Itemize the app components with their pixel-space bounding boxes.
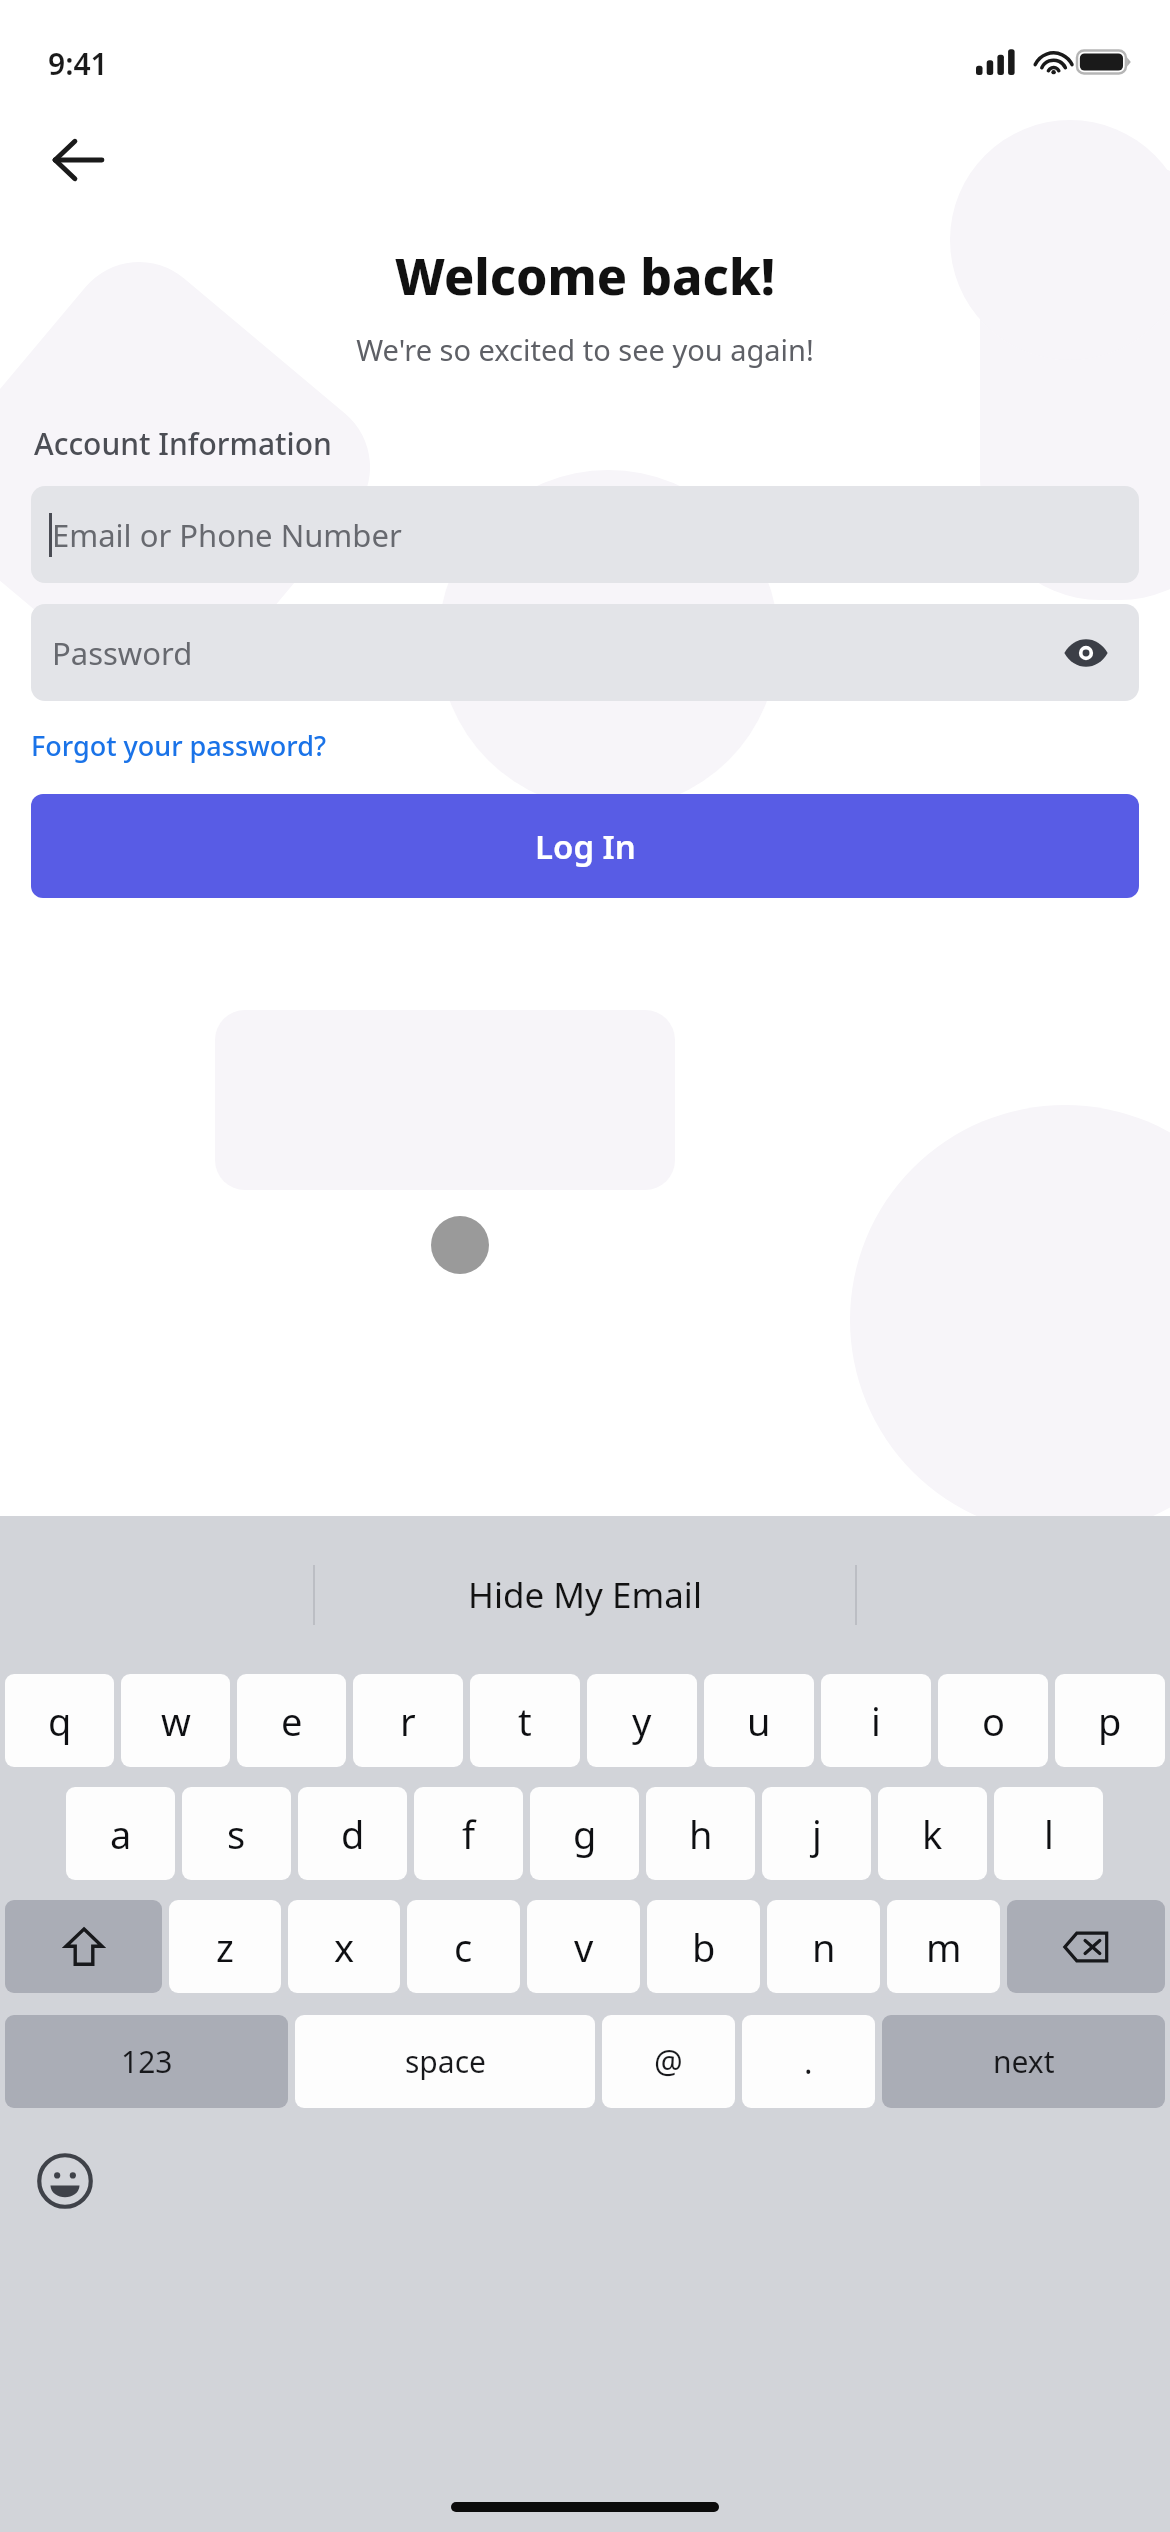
button[interactable]: a <box>66 1787 175 1880</box>
staticText: p <box>1098 1695 1122 1747</box>
button[interactable]: r <box>353 1674 463 1767</box>
button[interactable]: p <box>1055 1674 1165 1767</box>
button[interactable]: Show password <box>1055 622 1117 684</box>
staticText: next <box>993 2041 1055 2082</box>
button[interactable]: h <box>646 1787 755 1880</box>
button[interactable]: Backspace <box>1007 1900 1165 1993</box>
button[interactable]: d <box>298 1787 407 1880</box>
button[interactable]: b <box>647 1900 760 1993</box>
staticText: We're so excited to see you again! <box>0 330 1170 369</box>
staticText: s <box>227 1808 246 1860</box>
staticText: Log In <box>535 824 636 869</box>
button[interactable]: space <box>295 2015 595 2108</box>
staticText: f <box>462 1808 476 1860</box>
button[interactable]: s <box>182 1787 291 1880</box>
staticText: x <box>334 1921 355 1973</box>
staticText: z <box>216 1921 234 1973</box>
staticText: m <box>926 1921 962 1973</box>
staticText: v <box>574 1921 594 1973</box>
staticText: a <box>110 1808 132 1860</box>
button[interactable]: o <box>938 1674 1048 1767</box>
button[interactable]: q <box>5 1674 114 1767</box>
staticText: k <box>922 1808 943 1860</box>
button[interactable]: t <box>470 1674 580 1767</box>
staticText: y <box>632 1695 652 1747</box>
staticText: space <box>405 2041 486 2082</box>
button[interactable]: Forgot your password? <box>31 727 327 764</box>
button[interactable]: Hide My Email <box>468 1571 702 1619</box>
button[interactable]: i <box>821 1674 931 1767</box>
button[interactable]: Back <box>30 112 126 208</box>
staticText: i <box>871 1695 881 1747</box>
staticText: . <box>804 2040 813 2084</box>
button[interactable]: m <box>887 1900 1000 1993</box>
button[interactable]: w <box>121 1674 230 1767</box>
staticText: Account Information <box>34 423 332 464</box>
staticText: e <box>281 1695 303 1747</box>
staticText: Welcome back! <box>0 242 1170 310</box>
staticText: Password <box>52 632 193 674</box>
button[interactable]: v <box>527 1900 640 1993</box>
staticText: c <box>454 1921 473 1973</box>
button[interactable]: f <box>414 1787 523 1880</box>
button[interactable]: Log In <box>31 794 1139 898</box>
button[interactable]: g <box>530 1787 639 1880</box>
button[interactable]: y <box>587 1674 697 1767</box>
staticText: g <box>573 1808 597 1860</box>
button[interactable]: z <box>169 1900 281 1993</box>
button[interactable]: n <box>767 1900 880 1993</box>
staticText: r <box>400 1695 416 1747</box>
button[interactable]: Email or Phone Number <box>31 486 1139 583</box>
button[interactable]: next <box>882 2015 1165 2108</box>
button[interactable]: c <box>407 1900 520 1993</box>
staticText: n <box>812 1921 836 1973</box>
button[interactable]: Password <box>31 604 1139 701</box>
staticText: j <box>812 1808 822 1860</box>
staticText: d <box>341 1808 365 1860</box>
staticText: h <box>689 1808 713 1860</box>
staticText: w <box>161 1695 191 1747</box>
staticText: l <box>1044 1808 1054 1860</box>
button[interactable]: Emoji <box>26 2142 104 2220</box>
staticText: @ <box>654 2040 683 2084</box>
button[interactable]: k <box>878 1787 987 1880</box>
button[interactable]: l <box>994 1787 1103 1880</box>
button[interactable]: . <box>742 2015 875 2108</box>
button[interactable]: Shift <box>5 1900 162 1993</box>
staticText: 123 <box>121 2041 173 2082</box>
staticText: Email or Phone Number <box>52 514 402 556</box>
button[interactable]: @ <box>602 2015 735 2108</box>
button[interactable]: x <box>288 1900 400 1993</box>
staticText: u <box>747 1695 771 1747</box>
staticText: t <box>518 1695 532 1747</box>
staticText: o <box>982 1695 1005 1747</box>
button[interactable]: e <box>237 1674 346 1767</box>
staticText: q <box>48 1695 72 1747</box>
button[interactable]: u <box>704 1674 814 1767</box>
staticText: Forgot your password? <box>31 727 327 764</box>
staticText: 9:41 <box>48 43 108 84</box>
button[interactable]: j <box>762 1787 871 1880</box>
button[interactable]: 123 <box>5 2015 288 2108</box>
staticText: b <box>692 1921 716 1973</box>
